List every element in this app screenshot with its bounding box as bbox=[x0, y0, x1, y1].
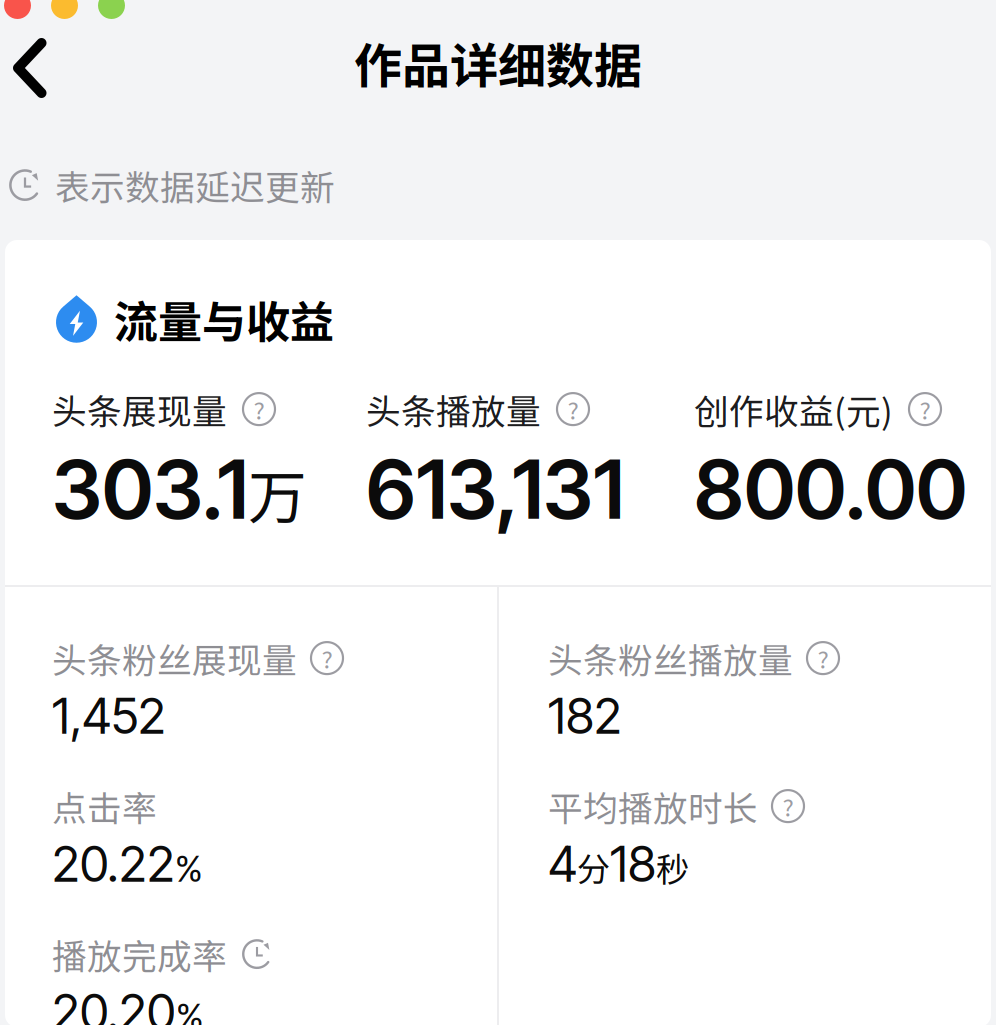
staticText: 万 bbox=[248, 451, 307, 536]
staticText: ? bbox=[782, 789, 793, 823]
staticText: 182 bbox=[548, 686, 622, 746]
staticText: 流量与收益 bbox=[114, 287, 334, 351]
staticText: 平均播放时长 bbox=[548, 781, 758, 831]
staticText: ? bbox=[253, 392, 264, 426]
staticText: 18 bbox=[610, 834, 656, 894]
staticText: ? bbox=[817, 641, 828, 675]
staticText: 800.00 bbox=[694, 440, 967, 538]
staticText: 点击率 bbox=[52, 781, 157, 831]
staticText: 4 bbox=[548, 834, 577, 894]
staticText: 头条粉丝展现量 bbox=[52, 633, 297, 683]
staticText: 613,131 bbox=[366, 440, 624, 538]
staticText: ? bbox=[919, 392, 930, 426]
staticText: 表示数据延迟更新 bbox=[55, 160, 335, 210]
staticText: 秒 bbox=[656, 843, 689, 891]
staticText: 作品详细数据 bbox=[354, 28, 642, 97]
staticText: ? bbox=[567, 392, 578, 426]
staticText: 1,452 bbox=[52, 686, 166, 746]
staticText: 头条播放量 bbox=[366, 384, 541, 434]
staticText: 303.1 bbox=[52, 440, 248, 538]
staticText: 创作收益(元) bbox=[694, 384, 893, 434]
staticText: ? bbox=[321, 641, 332, 675]
button[interactable]: 返回 bbox=[0, 0, 92, 125]
staticText: % bbox=[176, 995, 204, 1025]
staticText: 分 bbox=[577, 843, 610, 891]
staticText: 20.20 bbox=[52, 982, 176, 1025]
staticText: % bbox=[175, 847, 203, 890]
staticText: 头条展现量 bbox=[52, 384, 227, 434]
staticText: 播放完成率 bbox=[52, 929, 227, 979]
staticText: 头条粉丝播放量 bbox=[548, 633, 793, 683]
staticText: 20.22 bbox=[52, 834, 175, 894]
